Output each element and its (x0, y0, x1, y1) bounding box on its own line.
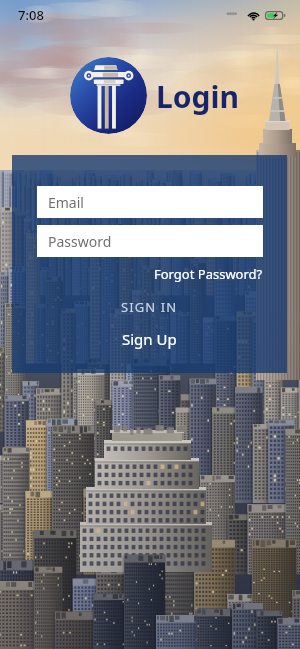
button[interactable]: Forgot Password? (12, 262, 287, 286)
button[interactable]: SIGN IN (12, 294, 287, 320)
staticText: Email (48, 193, 84, 212)
staticText: Forgot Password? (154, 265, 263, 283)
button[interactable]: Sign Up (12, 325, 287, 353)
staticText: Login (156, 76, 239, 117)
staticText: Password (48, 232, 112, 251)
button[interactable]: Email (37, 186, 263, 218)
button[interactable]: Password (37, 225, 263, 257)
staticText: 7:08 (18, 6, 44, 24)
staticText: SIGN IN (121, 298, 178, 316)
staticText: Sign Up (122, 329, 177, 349)
button[interactable]: Logo (70, 57, 147, 134)
